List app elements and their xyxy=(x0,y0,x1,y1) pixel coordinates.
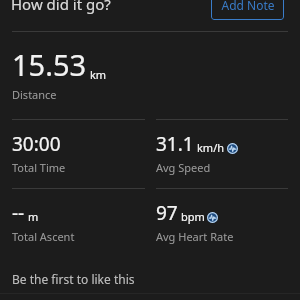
staticText: How did it go? xyxy=(11,0,111,14)
staticText: -- xyxy=(12,200,25,226)
staticText: m xyxy=(28,209,39,224)
staticText: Add Note xyxy=(221,0,275,13)
staticText: 31.1 xyxy=(156,131,194,157)
staticText: 97 xyxy=(156,200,178,226)
staticText: 15.53 xyxy=(12,45,87,84)
staticText: Total Time xyxy=(12,160,66,175)
button[interactable]: Be the first to like this xyxy=(0,265,300,293)
staticText: Be the first to like this xyxy=(12,271,135,287)
staticText: 30:00 xyxy=(12,131,61,157)
staticText: Distance xyxy=(12,87,57,102)
staticText: km/h xyxy=(197,140,225,155)
staticText: km xyxy=(90,67,107,82)
staticText: Avg Speed xyxy=(156,160,211,175)
staticText: Avg Heart Rate xyxy=(156,229,234,244)
staticText: Total Ascent xyxy=(12,229,75,244)
staticText: bpm xyxy=(181,209,205,224)
button[interactable]: Add Note xyxy=(211,0,284,20)
